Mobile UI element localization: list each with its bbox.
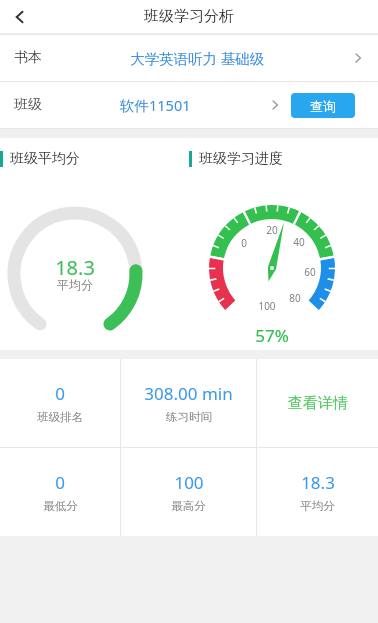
button[interactable]: 0 bbox=[0, 448, 120, 536]
button[interactable]: 书本 bbox=[0, 35, 378, 81]
staticText: 班级排名 bbox=[37, 410, 83, 424]
staticText: 最高分 bbox=[171, 499, 206, 513]
staticText: 57% bbox=[248, 324, 296, 347]
staticText: 100 bbox=[174, 471, 204, 494]
staticText: 班级学习进度 bbox=[199, 150, 283, 168]
staticText: 308.00 min bbox=[144, 382, 233, 405]
staticText: 100 bbox=[255, 299, 279, 313]
staticText: 大学英语听力 基础级 bbox=[130, 48, 265, 68]
staticText: 0 bbox=[232, 236, 256, 250]
staticText: 平均分 bbox=[300, 499, 335, 513]
staticText: 18.3 bbox=[46, 254, 104, 281]
button[interactable]: 100 bbox=[121, 448, 256, 536]
button[interactable]: 班级 bbox=[0, 82, 291, 128]
staticText: 0 bbox=[55, 382, 65, 405]
staticText: 80 bbox=[283, 291, 307, 305]
staticText: 查看详情 bbox=[288, 394, 348, 413]
staticText: 平均分 bbox=[46, 277, 104, 292]
staticText: 最低分 bbox=[43, 499, 78, 513]
staticText: 书本 bbox=[14, 49, 42, 67]
button[interactable]: Back bbox=[0, 0, 40, 33]
button[interactable]: 308.00 min bbox=[121, 359, 256, 447]
staticText: 班级平均分 bbox=[10, 150, 80, 168]
staticText: 班级 bbox=[14, 96, 42, 114]
button[interactable]: 查询 bbox=[291, 93, 355, 118]
staticText: 软件11501 bbox=[120, 95, 191, 115]
staticText: 20 bbox=[260, 223, 284, 237]
staticText: 0 bbox=[55, 471, 65, 494]
staticText: 18.3 bbox=[301, 471, 335, 494]
staticText: 查询 bbox=[310, 98, 336, 114]
staticText: 40 bbox=[287, 235, 311, 249]
button[interactable]: 0 bbox=[0, 359, 120, 447]
button[interactable]: 查看详情 bbox=[257, 359, 378, 447]
button[interactable]: 18.3 bbox=[257, 448, 378, 536]
staticText: 班级学习分析 bbox=[144, 7, 234, 26]
staticText: 60 bbox=[298, 265, 322, 279]
staticText: 练习时间 bbox=[166, 410, 212, 424]
